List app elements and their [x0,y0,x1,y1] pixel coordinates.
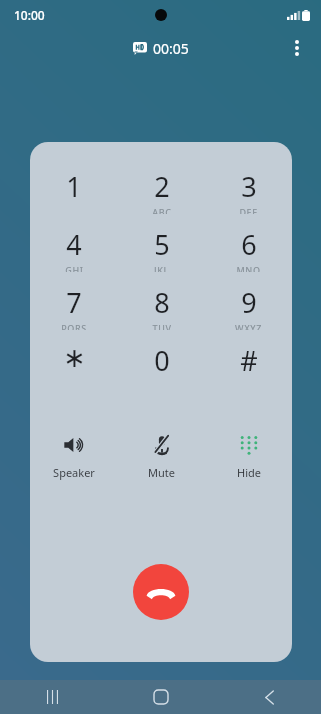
button[interactable]: 4 [30,226,118,272]
button[interactable]: Recent apps [30,680,74,714]
staticText: 6 [241,226,257,263]
button[interactable]: # [205,342,292,388]
button[interactable]: 8 [118,284,205,330]
staticText: 2 [154,168,170,205]
button[interactable]: 5 [118,226,205,272]
staticText: # [240,342,258,379]
staticText: 0 [154,342,170,379]
button[interactable]: 9 [205,284,292,330]
staticText: Mute [148,465,175,480]
staticText: WXYZ [235,322,262,330]
button[interactable]: Mute [118,432,205,480]
button[interactable]: ∗ [30,342,118,388]
staticText: 7 [66,284,82,321]
button[interactable]: 3 [205,168,292,214]
staticText: Hide [237,465,261,480]
button[interactable]: 2 [118,168,205,214]
button[interactable]: Hide [205,432,292,480]
staticText: JKL [154,264,169,272]
button[interactable]: Home [139,680,183,714]
button[interactable]: 1 [30,168,118,214]
button[interactable]: End call [133,564,189,620]
staticText: 10:00 [14,7,45,23]
staticText: ∗ [63,342,86,373]
staticText: TUV [152,322,172,330]
staticText: 9 [241,284,257,321]
staticText: 4 [66,226,82,263]
button[interactable]: 7 [30,284,118,330]
staticText: GHI [65,264,84,272]
button[interactable]: More options [279,30,315,66]
staticText: 1 [66,168,82,205]
staticText: Speaker [53,465,95,480]
staticText: 00:05 [153,39,189,58]
button[interactable]: 0 [118,342,205,388]
button[interactable]: Back [247,680,291,714]
staticText: 3 [241,168,257,205]
staticText: PQRS [61,322,87,330]
staticText: ABC [152,206,172,214]
staticText: 5 [154,226,170,263]
staticText: 8 [154,284,170,321]
staticText: DEF [239,206,258,214]
button[interactable]: Speaker [30,432,118,480]
button[interactable]: 6 [205,226,292,272]
staticText: MNO [236,264,261,272]
